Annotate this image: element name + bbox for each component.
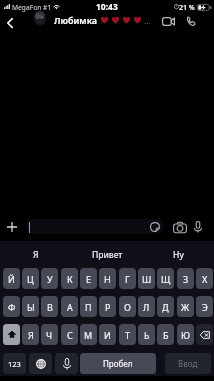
staticText: 10:43 [96,1,118,13]
staticText: П [85,301,92,313]
button[interactable]: Ь [138,324,155,345]
button[interactable]: Ну [143,244,214,265]
button[interactable]: Любимка [54,14,151,26]
staticText: Л [143,301,150,313]
button[interactable]: М [80,324,97,345]
button[interactable]: В [41,296,58,317]
staticText: Ж [181,301,190,313]
staticText: Ю [181,329,190,341]
button[interactable]: А [61,296,78,317]
staticText: Т [125,329,131,341]
staticText: З [183,273,189,285]
staticText: Ф [8,301,16,313]
button[interactable]: Ы [22,296,39,317]
staticText: Ш [142,273,152,285]
staticText: Ч [46,329,53,341]
staticText: MegaFon #1 [12,3,52,12]
staticText: Э [202,301,208,313]
staticText: Е [86,273,92,285]
button[interactable]: Profile picture [33,11,47,25]
button[interactable]: Ч [41,324,58,345]
button[interactable] [26,219,164,234]
button[interactable]: Т [119,324,136,345]
staticText: Ц [27,273,34,285]
button[interactable]: Stickers [144,217,165,237]
staticText: Ь [144,329,150,341]
button[interactable]: Й [3,268,20,289]
button[interactable]: Э [196,296,213,317]
staticText: Г [125,273,130,285]
staticText: К [67,273,73,285]
button[interactable]: П [80,296,97,317]
staticText: Ну [173,249,184,261]
button[interactable]: Dictate [55,353,78,374]
button[interactable]: К [61,268,78,289]
staticText: Ы [27,301,35,313]
staticText: С [67,329,73,341]
button[interactable]: Пробел [80,353,156,374]
staticText: Я [28,329,34,341]
button[interactable]: Привет [72,244,143,265]
button[interactable]: Video call [159,11,178,31]
staticText: Я [33,249,39,261]
button[interactable]: С [61,324,78,345]
button[interactable]: Change keyboard [29,353,52,374]
staticText: 123 [8,359,21,369]
button[interactable]: Ш [138,268,155,289]
staticText: О [124,301,131,313]
staticText: У [47,273,53,285]
staticText: А [67,301,73,313]
button[interactable]: Л [138,296,155,317]
button[interactable]: Ю [177,324,194,345]
button[interactable]: Д [157,296,174,317]
button[interactable]: Voice call [183,11,198,31]
button[interactable]: Back [1,13,19,33]
staticText: Н [104,273,111,285]
button[interactable]: Ф [3,296,20,317]
staticText: И [104,329,111,341]
button[interactable]: Ж [177,296,194,317]
staticText: Й [8,273,15,285]
staticText: Привет [92,249,123,261]
button[interactable]: Я [22,324,39,345]
staticText: Б [163,329,169,341]
staticText: М [84,329,93,341]
button[interactable]: Е [80,268,97,289]
button[interactable]: Щ [157,268,174,289]
button[interactable]: Ц [22,268,39,289]
button[interactable]: О [119,296,136,317]
staticText: Р [105,301,111,313]
staticText: 21 % [179,3,195,13]
button[interactable]: Х [196,268,213,289]
button[interactable]: Ввод [165,353,211,374]
button[interactable]: Attach [1,217,23,237]
staticText: Щ [161,273,171,285]
button[interactable]: И [99,324,116,345]
staticText: … [144,15,151,26]
button[interactable]: У [41,268,58,289]
button[interactable]: Camera [169,217,191,237]
staticText: Х [202,273,208,285]
button[interactable]: Shift [3,324,20,345]
button[interactable]: Р [99,296,116,317]
button[interactable]: Voice message [192,217,204,237]
staticText: Любимка [54,14,97,26]
staticText: Д [162,301,169,313]
button[interactable]: З [177,268,194,289]
button[interactable]: Backspace [196,324,213,345]
button[interactable]: 123 [3,353,26,374]
staticText: Ввод [178,358,198,369]
staticText: В [47,301,53,313]
button[interactable]: Г [119,268,136,289]
staticText: Пробел [103,358,133,369]
button[interactable]: Я [0,244,72,265]
button[interactable]: Б [157,324,174,345]
button[interactable]: Н [99,268,116,289]
